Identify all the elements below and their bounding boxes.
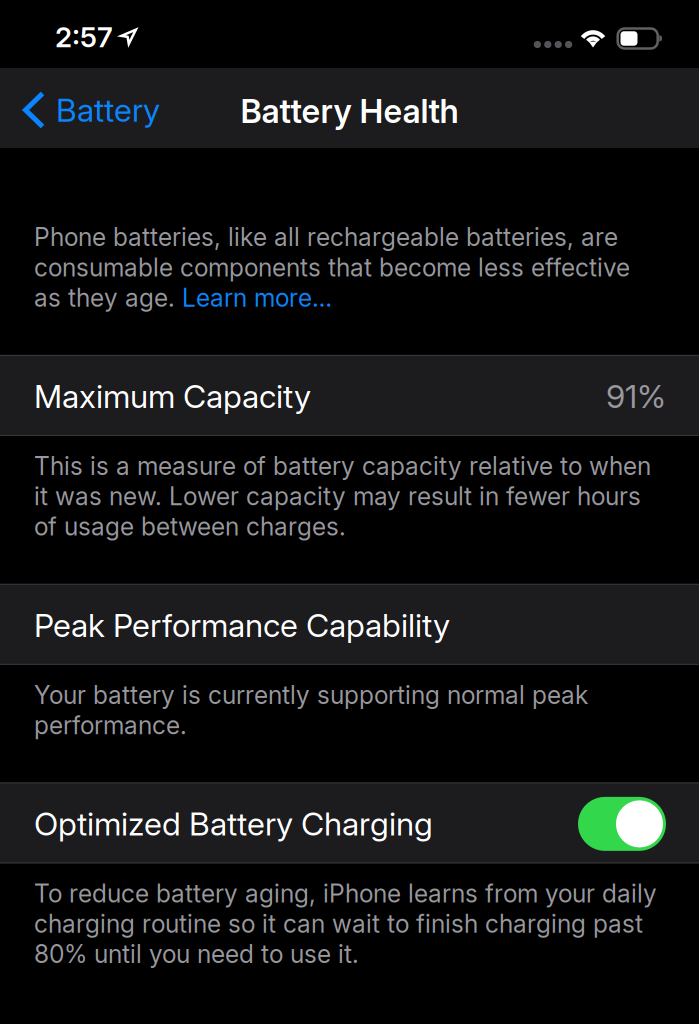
staticText: Phone batteries, like all rechargeable b… bbox=[34, 222, 618, 252]
staticText: it was new. Lower capacity may result in… bbox=[34, 481, 641, 511]
staticText: Peak Performance Capability bbox=[34, 606, 450, 645]
staticText: performance. bbox=[34, 710, 187, 740]
staticText: Your battery is currently supporting nor… bbox=[34, 680, 588, 710]
button[interactable]: Peak Performance Capability bbox=[0, 584, 699, 665]
staticText: 91% bbox=[606, 377, 666, 416]
staticText: charging routine so it can wait to finis… bbox=[34, 909, 643, 939]
staticText: This is a measure of battery capacity re… bbox=[34, 451, 651, 481]
staticText: 80% until you need to use it. bbox=[34, 939, 359, 969]
staticText: as they age. bbox=[34, 283, 182, 313]
button[interactable]: Maximum Capacity bbox=[0, 355, 699, 436]
button[interactable]: Optimized Battery Charging bbox=[578, 797, 666, 851]
staticText: consumable components that become less e… bbox=[34, 252, 630, 282]
staticText: 2:57 bbox=[55, 20, 113, 54]
staticText: Battery Health bbox=[240, 91, 458, 131]
staticText: of usage between charges. bbox=[34, 512, 346, 541]
staticText: Optimized Battery Charging bbox=[34, 804, 433, 843]
button[interactable]: Battery bbox=[0, 68, 176, 148]
button[interactable]: Learn more… bbox=[182, 283, 332, 313]
staticText: To reduce battery aging, iPhone learns f… bbox=[34, 879, 657, 908]
staticText: Learn more… bbox=[182, 283, 332, 313]
staticText: Battery bbox=[56, 91, 160, 129]
staticText: Maximum Capacity bbox=[34, 377, 311, 416]
